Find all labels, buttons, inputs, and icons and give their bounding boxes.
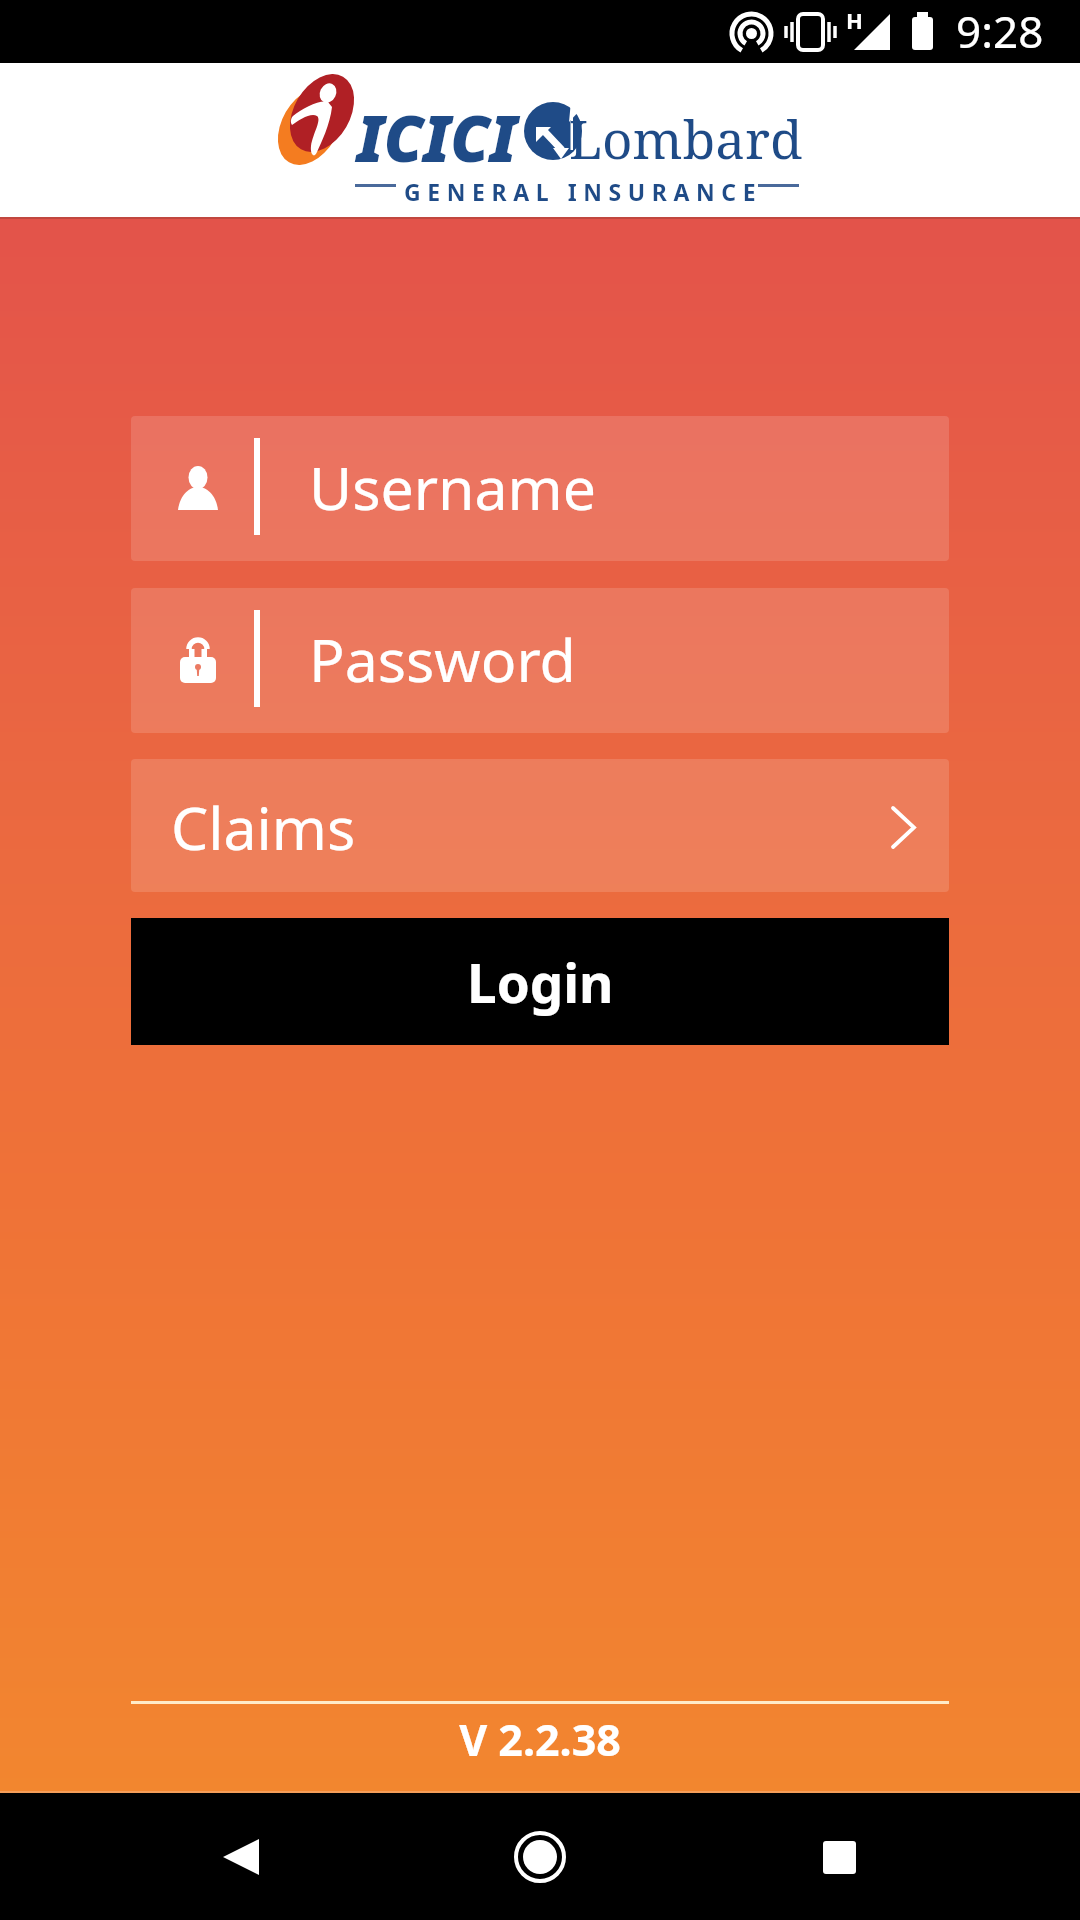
staticText: Claims	[171, 787, 356, 867]
button[interactable]: Recents	[779, 1797, 899, 1917]
button[interactable]: Home	[480, 1797, 600, 1917]
button[interactable]: Login	[131, 918, 949, 1045]
staticText: V 2.2.38	[0, 1710, 1080, 1769]
staticText: 9:28	[956, 1, 1044, 61]
button[interactable]: Back	[181, 1797, 301, 1917]
button[interactable]: Password	[131, 588, 949, 733]
button[interactable]: Claims	[131, 759, 949, 892]
staticText: Login	[467, 946, 614, 1018]
staticText: H	[846, 5, 863, 35]
staticText: GENERAL INSURANCE	[404, 176, 763, 207]
staticText: Username	[309, 447, 597, 527]
staticText: Password	[309, 619, 576, 699]
staticText: Lombard	[569, 102, 803, 174]
button[interactable]: Username	[131, 416, 949, 561]
staticText: ICICI	[357, 95, 517, 181]
